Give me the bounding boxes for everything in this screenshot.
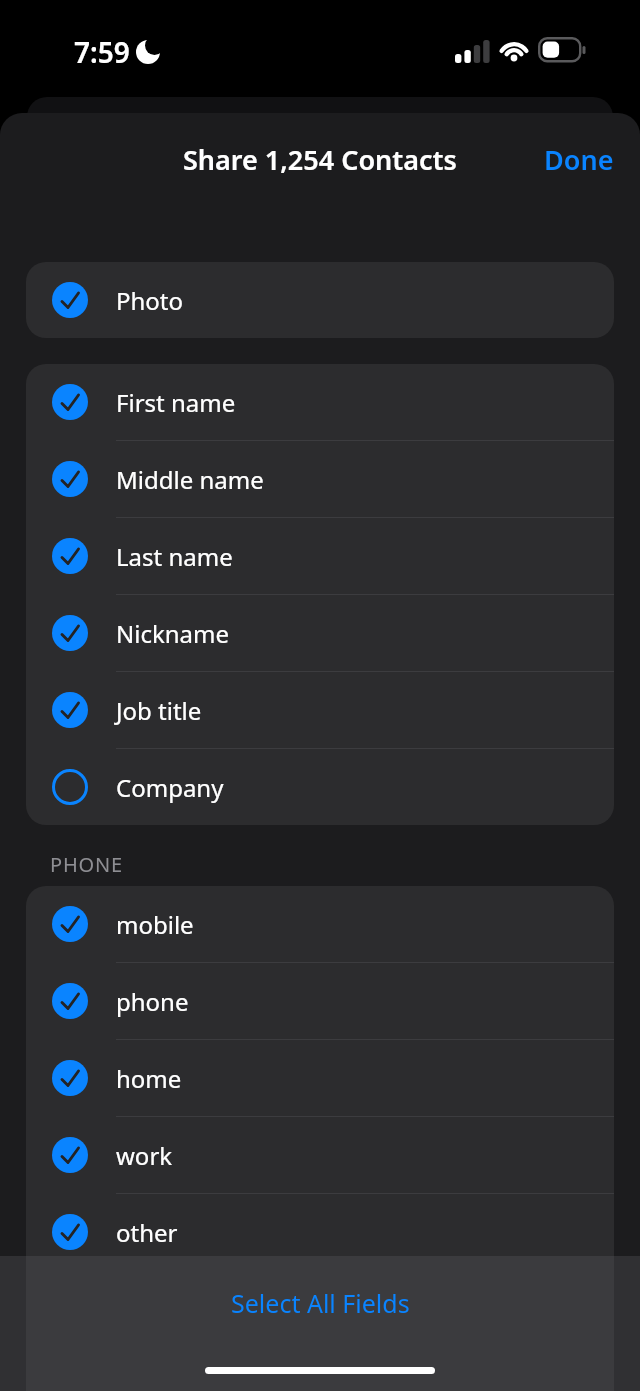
staticText: Company — [116, 771, 224, 804]
staticText: Select All Fields — [231, 1286, 410, 1320]
staticText: 7:59 — [74, 33, 130, 71]
button[interactable]: Photo — [26, 262, 614, 338]
button[interactable]: Select All Fields — [231, 1286, 410, 1320]
button[interactable]: Nickname — [26, 595, 614, 671]
staticText: Middle name — [116, 463, 264, 496]
button[interactable]: Job title — [26, 672, 614, 748]
button[interactable]: phone — [26, 963, 614, 1039]
staticText: home — [116, 1062, 182, 1095]
staticText: phone — [116, 985, 189, 1018]
staticText: Nickname — [116, 617, 230, 650]
staticText: Last name — [116, 540, 233, 573]
staticText: Photo — [116, 284, 184, 317]
button[interactable]: Middle name — [26, 441, 614, 517]
button[interactable]: Done — [544, 141, 614, 178]
staticText: other — [116, 1216, 178, 1249]
staticText: Share 1,254 Contacts — [183, 141, 457, 178]
button[interactable]: mobile — [26, 886, 614, 962]
button[interactable]: other — [26, 1194, 614, 1270]
button[interactable]: Last name — [26, 518, 614, 594]
staticText: mobile — [116, 908, 194, 941]
staticText: Done — [544, 141, 614, 178]
staticText: work — [116, 1139, 173, 1172]
staticText: Job title — [116, 694, 202, 727]
button[interactable]: First name — [26, 364, 614, 440]
button[interactable]: home — [26, 1040, 614, 1116]
staticText: PHONE — [50, 851, 123, 878]
button[interactable]: Company — [26, 749, 614, 825]
staticText: First name — [116, 386, 236, 419]
button[interactable]: work — [26, 1117, 614, 1193]
